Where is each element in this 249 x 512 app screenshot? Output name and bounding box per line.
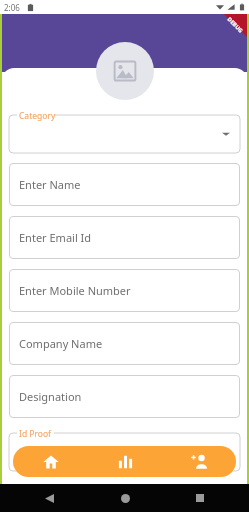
button[interactable]: Profile photo	[96, 42, 154, 100]
staticText: Id Proof	[19, 428, 52, 440]
staticText: Enter Mobile Number	[19, 283, 131, 298]
button[interactable]: Enter Name	[9, 163, 240, 206]
button[interactable]: Category	[9, 110, 240, 153]
staticText: Enter Name	[19, 177, 81, 192]
staticText: Company Name	[19, 336, 103, 351]
button[interactable]: Home	[116, 489, 134, 507]
button[interactable]: Enter Email Id	[9, 216, 240, 259]
button[interactable]: Designation	[9, 375, 240, 418]
staticText: Category	[19, 110, 56, 122]
button[interactable]: Add contact	[162, 446, 236, 477]
button[interactable]: Enter Mobile Number	[9, 269, 240, 312]
staticText: 2:06	[4, 2, 20, 13]
staticText: Enter Email Id	[19, 230, 92, 245]
button[interactable]: Home	[13, 446, 88, 477]
button[interactable]: Back	[40, 489, 58, 507]
button[interactable]: Statistics	[88, 446, 162, 477]
staticText: DEBUG	[226, 15, 245, 34]
button[interactable]: Id Proof	[9, 428, 240, 471]
button[interactable]: Company Name	[9, 322, 240, 365]
staticText: Designation	[19, 389, 82, 404]
button[interactable]: Recent apps	[191, 489, 209, 507]
